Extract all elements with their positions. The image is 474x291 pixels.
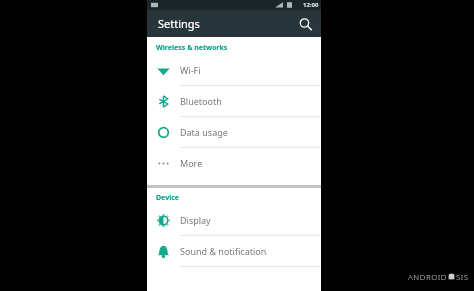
- staticText: Display: [180, 214, 211, 226]
- staticText: 12:00: [303, 1, 319, 9]
- button[interactable]: More: [147, 148, 321, 178]
- button[interactable]: Search: [295, 14, 315, 34]
- staticText: Bluetooth: [180, 95, 222, 107]
- staticText: Wi-Fi: [180, 64, 201, 76]
- staticText: Wireless & networks: [156, 43, 228, 53]
- button[interactable]: Wi-Fi: [147, 55, 321, 86]
- staticText: Sound & notification: [180, 245, 267, 257]
- staticText: Data usage: [180, 126, 228, 138]
- staticText: More: [180, 157, 203, 169]
- staticText: Device: [156, 193, 180, 203]
- staticText: Settings: [158, 16, 200, 31]
- staticText: SIS: [456, 271, 469, 282]
- button[interactable]: Data usage: [147, 117, 321, 148]
- button[interactable]: Display: [147, 205, 321, 236]
- button[interactable]: Bluetooth: [147, 86, 321, 117]
- staticText: ANDROID: [408, 271, 447, 282]
- button[interactable]: Sound & notification: [147, 236, 321, 267]
